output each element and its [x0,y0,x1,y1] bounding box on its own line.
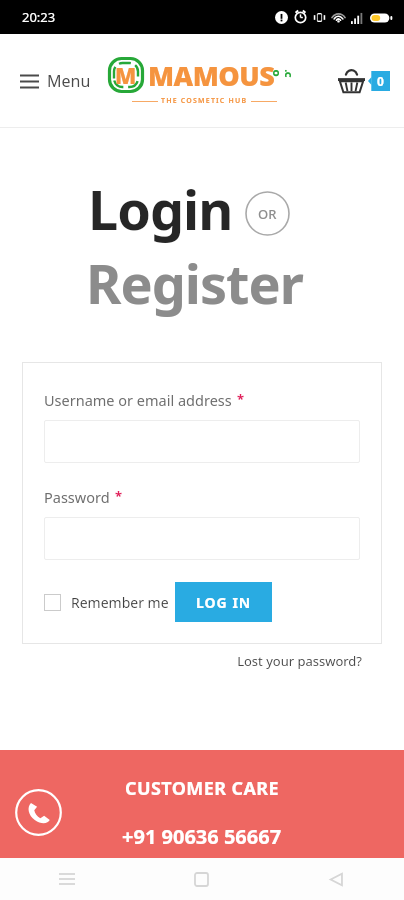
staticText: * [115,487,123,505]
staticText: Password [44,487,110,507]
staticText: Remember me [71,593,169,612]
button[interactable]: Lost your password? [0,652,362,670]
button[interactable]: CUSTOMER CARE [0,750,404,858]
button[interactable]: Text input [44,517,360,560]
button[interactable]: Menu [16,64,95,98]
staticText: Menu [47,70,91,92]
staticText: Username or email address [44,390,232,410]
button[interactable]: Mamous home [106,55,287,106]
staticText: THE COSMETIC HUB [161,96,248,106]
staticText: * [237,390,245,408]
staticText: .COM [268,69,294,80]
staticText: OR [258,205,277,223]
button[interactable]: Remember me [44,589,169,616]
staticText: Login [88,172,233,246]
button[interactable]: Text input [44,420,360,463]
staticText: 0 [377,73,384,89]
button[interactable]: Cart, 0 items [338,69,390,93]
button[interactable]: Recents [0,858,134,900]
button[interactable]: Back [269,858,404,900]
staticText: MAMOUS [148,57,275,94]
staticText: CUSTOMER CARE [125,776,279,801]
staticText: +91 90636 56667 [122,823,282,850]
staticText: LOG IN [196,593,252,612]
button[interactable]: LOG IN [175,582,272,622]
staticText: M [115,60,137,90]
button[interactable]: Home [134,858,269,900]
staticText: 20:23 [22,8,56,26]
button[interactable]: Register [86,246,303,320]
